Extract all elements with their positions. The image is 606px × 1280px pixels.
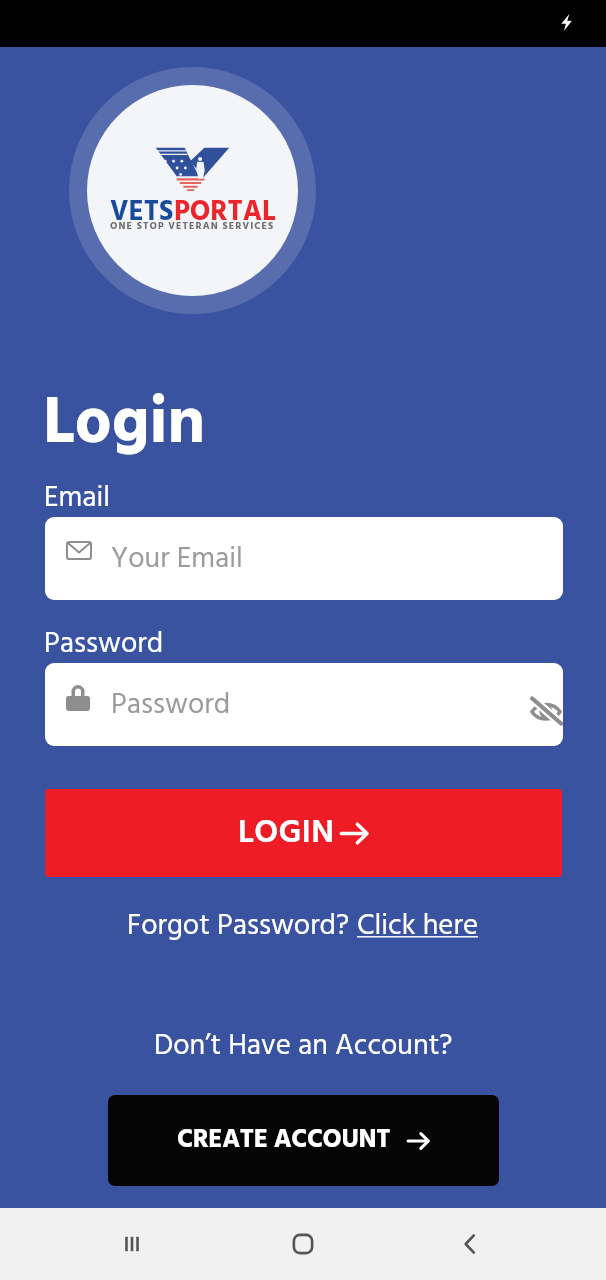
staticText: ONE STOP VETERAN SERVICES	[110, 218, 275, 234]
staticText: CREATE ACCOUNT	[177, 1120, 391, 1162]
staticText: Don’t Have an Account?	[154, 1023, 453, 1069]
button[interactable]: Back	[442, 1216, 498, 1272]
staticText: Forgot Password?	[127, 903, 357, 949]
staticText: PORTAL	[174, 190, 276, 235]
button[interactable]: Password	[45, 663, 563, 746]
staticText: Email	[44, 475, 111, 521]
button[interactable]: Recent apps	[104, 1216, 160, 1272]
staticText: LOGIN	[238, 807, 335, 860]
staticText: Password	[44, 621, 164, 667]
button[interactable]: LOGIN	[45, 789, 562, 877]
button[interactable]: Click here	[357, 903, 479, 949]
staticText: Password	[111, 682, 231, 728]
staticText: Login	[43, 373, 206, 477]
button[interactable]: Home	[275, 1216, 331, 1272]
button[interactable]: Your Email	[45, 517, 563, 600]
button[interactable]: CREATE ACCOUNT	[108, 1095, 499, 1186]
button[interactable]: Show password	[521, 684, 563, 726]
staticText: Your Email	[111, 536, 243, 582]
staticText: VETS	[110, 190, 174, 235]
